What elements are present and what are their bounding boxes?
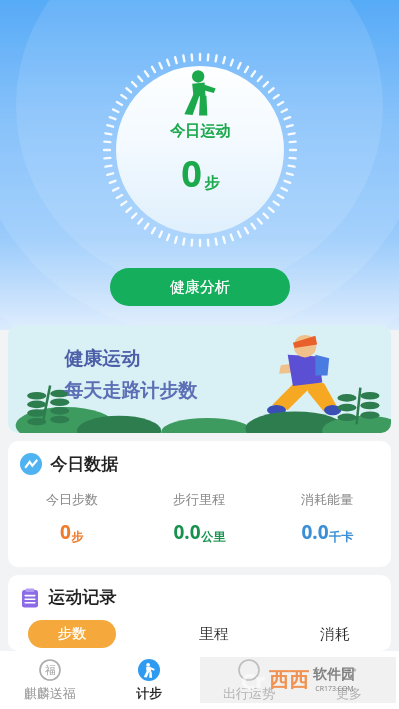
staticText: CR173.COM <box>315 684 354 694</box>
staticText: 软件园 <box>313 666 355 684</box>
other: 麒麟送福 <box>39 659 61 681</box>
staticText: 健康运动 <box>64 347 140 371</box>
other: 计步 <box>138 659 160 681</box>
staticText: 千卡 <box>329 529 353 544</box>
staticText: 0 <box>181 149 202 198</box>
other: 更多 <box>338 659 360 681</box>
staticText: 健康分析 <box>170 278 230 297</box>
staticText: 今日运动 <box>170 122 230 141</box>
staticText: 每天走路计步数 <box>64 379 197 403</box>
staticText: Cr <box>241 665 265 695</box>
staticText: 计步 <box>136 685 162 701</box>
button[interactable]: 更多 <box>299 651 399 709</box>
staticText: 里程 <box>199 625 229 644</box>
button[interactable]: 健康运动 <box>8 325 391 433</box>
staticText: 消耗 <box>320 625 350 644</box>
staticText: 0.0 <box>173 519 201 545</box>
staticText: 0.0 <box>301 519 329 545</box>
other: 出行运势 <box>238 659 260 681</box>
staticText: 出行运势 <box>223 685 275 701</box>
button[interactable]: 麒麟送福 <box>0 651 99 709</box>
button[interactable]: 健康分析 <box>110 268 290 306</box>
staticText: 今日数据 <box>50 454 118 475</box>
staticText: 公里 <box>201 529 225 544</box>
button[interactable]: 步数 <box>28 620 116 648</box>
staticText: 步行里程 <box>173 491 225 507</box>
staticText: 步数 <box>58 625 86 643</box>
button[interactable]: 计步 <box>99 651 199 709</box>
staticText: 步 <box>204 174 219 193</box>
staticText: 西西 <box>269 668 309 693</box>
staticText: 消耗能量 <box>301 491 353 507</box>
staticText: 步 <box>71 529 83 544</box>
staticText: 0 <box>60 519 71 545</box>
staticText: 更多 <box>336 685 362 701</box>
staticText: 运动记录 <box>48 587 116 608</box>
staticText: 福 <box>45 663 56 677</box>
staticText: 今日步数 <box>46 491 98 507</box>
staticText: 麒麟送福 <box>24 685 76 701</box>
button[interactable]: 出行运势 <box>199 651 299 709</box>
